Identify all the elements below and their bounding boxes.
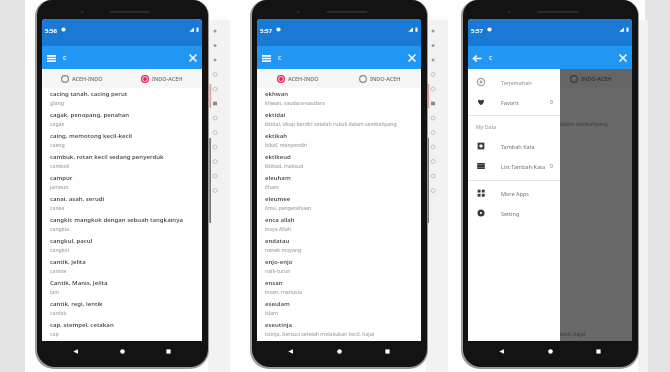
button[interactable]: cagak, penopang, penahan [42, 109, 202, 130]
button[interactable]: cantik, regi, lentik [42, 298, 202, 319]
button[interactable]: Open navigation menu [260, 52, 272, 64]
button[interactable]: List Tambah Kata [468, 156, 560, 176]
button[interactable]: enjo-enjo [468, 256, 632, 277]
staticText: khwan, saudara-saudara [476, 99, 536, 106]
button[interactable]: cacing tanah, cacing perut [42, 88, 202, 109]
button[interactable]: Cantik, Manis, Jelita [42, 277, 202, 298]
button[interactable]: ACEH-INDO [468, 69, 550, 88]
button[interactable]: INDO-ACEH [339, 69, 421, 88]
staticText: ektikah [265, 132, 288, 140]
button[interactable]: ektikeud [468, 151, 632, 172]
button[interactable]: endatau [257, 235, 421, 256]
button[interactable]: campur [42, 172, 202, 193]
button[interactable]: endatau [468, 235, 632, 256]
button[interactable]: cangkul, pacul [42, 235, 202, 256]
staticText: Terjemahan [501, 79, 532, 86]
staticText: iktidal, sikap berdiri setelah rukuk dal… [476, 120, 608, 127]
button[interactable]: ACEH-INDO [257, 69, 339, 88]
button[interactable]: INDO-ACEH [550, 69, 632, 88]
staticText: iktidal, sikap berdiri setelah rukuk dal… [265, 120, 397, 127]
staticText: More Apps [501, 190, 529, 197]
button[interactable]: Tambah Kata [468, 136, 560, 156]
button[interactable]: cambuk, rotan kecil sedang penyerduk [42, 151, 202, 172]
button[interactable]: ensan [468, 277, 632, 298]
button[interactable]: Clear search [617, 52, 629, 64]
staticText: cantik, regi, lentik [50, 300, 103, 308]
staticText: INDO-ACEH [370, 75, 401, 82]
staticText: 0 [550, 99, 553, 106]
button[interactable]: ekhwan [257, 88, 421, 109]
button[interactable]: Setting [468, 203, 560, 223]
button[interactable]: eseutinja [257, 319, 421, 340]
staticText: iktikad, maksud [476, 162, 515, 169]
button[interactable]: Clear search [406, 52, 418, 64]
staticText: Setting [501, 210, 520, 217]
staticText: cantik, jelita [50, 258, 86, 266]
button[interactable]: eleuham [257, 172, 421, 193]
staticText: eleuham [476, 174, 502, 182]
button[interactable]: cangkir, mangkok dengan sebuah tangkainy… [42, 214, 202, 235]
staticText: ilmu, pengetahuan [265, 204, 312, 211]
button[interactable]: Back [471, 52, 483, 64]
button[interactable]: enca allah [468, 214, 632, 235]
button[interactable]: eseulam [468, 298, 632, 319]
staticText: cangkir, mangkok dengan sebuah tangkainy… [50, 216, 183, 224]
staticText: eseulam [265, 300, 290, 308]
staticText: cagak, penopang, penahan [50, 111, 130, 119]
button[interactable]: INDO-ACEH [122, 69, 202, 88]
button[interactable]: Terjemahan [468, 72, 560, 92]
staticText: endatau [265, 237, 290, 245]
button[interactable]: ektikah [468, 130, 632, 151]
button[interactable]: caing, memotong kecil-kecil [42, 130, 202, 151]
button[interactable]: eleumee [468, 193, 632, 214]
staticText: Favorit [501, 99, 519, 106]
staticText: cambuk, rotan kecil sedang penyerduk [50, 153, 164, 161]
staticText: eleumee [476, 195, 502, 203]
button[interactable]: eleuham [468, 172, 632, 193]
staticText: cap, stempel, cetakan [50, 321, 114, 329]
button[interactable]: ACEH-INDO [42, 69, 122, 88]
button[interactable]: enca allah [257, 214, 421, 235]
button[interactable]: ektidai [468, 109, 632, 130]
button[interactable]: Favorit [468, 92, 560, 112]
button[interactable]: cap, stempel, cetakan [42, 319, 202, 340]
button[interactable]: eseulam [257, 298, 421, 319]
button[interactable]: Clear search [187, 52, 199, 64]
button[interactable]: ektikah [257, 130, 421, 151]
button[interactable]: ensan [257, 277, 421, 298]
staticText: My Data [476, 123, 497, 130]
staticText: ACEH-INDO [288, 75, 319, 82]
staticText: cambok [50, 162, 70, 169]
button[interactable]: ekhwan [468, 88, 632, 109]
staticText: istinja, bersuci setelah melakukan kecil… [265, 330, 375, 337]
staticText: ilmu, pengetahuan [476, 204, 523, 211]
button[interactable]: enjo-enjo [257, 256, 421, 277]
staticText: cangkoi [50, 246, 70, 253]
staticText: itikaf, menyendiri [476, 141, 519, 148]
button[interactable]: eleumee [257, 193, 421, 214]
button[interactable]: ektikeud [257, 151, 421, 172]
button[interactable]: More Apps [468, 183, 560, 203]
staticText: cantek [50, 309, 67, 316]
button[interactable]: ektidai [257, 109, 421, 130]
staticText: ektidai [476, 111, 497, 119]
button[interactable]: canai, asah, serudi [42, 193, 202, 214]
button[interactable]: cantik, jelita [42, 256, 202, 277]
staticText: jameun [50, 183, 69, 190]
button[interactable]: Open navigation menu [45, 52, 57, 64]
staticText: eleumee [265, 195, 291, 203]
button[interactable]: eseutinja [468, 319, 632, 340]
staticText: INDO-ACEH [152, 75, 183, 82]
staticText: iktikad, maksud [265, 162, 304, 169]
staticText: khwan, saudara-saudara [265, 99, 325, 106]
staticText: ilham [265, 183, 279, 190]
staticText: enca allah [476, 216, 506, 224]
staticText: insya Allah [265, 225, 292, 232]
